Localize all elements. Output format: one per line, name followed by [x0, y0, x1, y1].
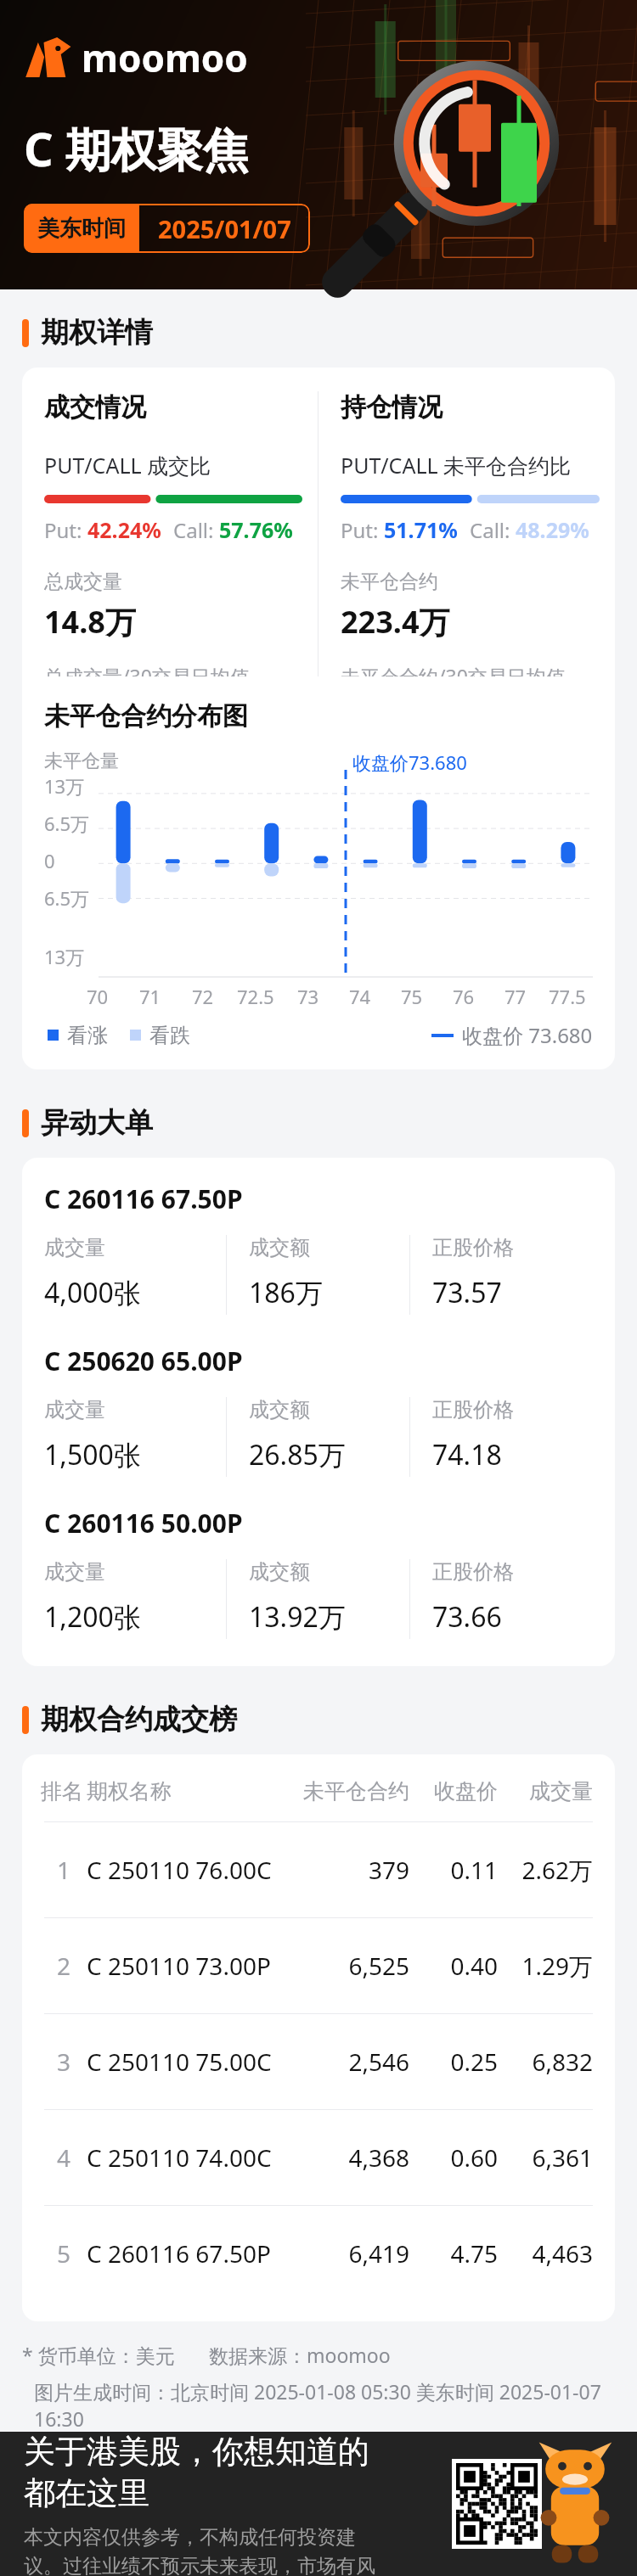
staticText: C 期权聚焦	[24, 117, 249, 180]
staticText: * 货币单位：美元	[22, 2342, 175, 2368]
staticText: 本文内容仅供参考，不构成任何投资建议。过往业绩不预示未来表现，市场有风险，投资需…	[24, 2525, 389, 2576]
staticText: 未平仓量	[44, 749, 119, 773]
staticText: 关于港美股，你想知道的都在这里	[24, 2432, 389, 2513]
staticText: 未平仓合约/30交易日均值	[341, 663, 566, 676]
button[interactable]: 5	[22, 2206, 615, 2301]
button[interactable]: C 260116 67.50P	[22, 1158, 615, 1315]
staticText: 71	[139, 984, 161, 1009]
staticText: 14.8万	[44, 601, 136, 643]
staticText: 正股价格	[432, 1397, 514, 1423]
staticText: 收盘价 73.680	[462, 1021, 593, 1049]
staticText: 成交额	[249, 1235, 310, 1260]
staticText: 总成交量/30交易日均值	[44, 663, 250, 676]
staticText: 6,832	[498, 2046, 593, 2078]
staticText: 排名	[41, 1778, 87, 1804]
staticText: 2.62万	[498, 1854, 593, 1886]
staticText: 看涨	[67, 1023, 108, 1048]
staticText: 0.60	[409, 2141, 498, 2174]
button[interactable]: 美东时间	[24, 204, 310, 253]
staticText: 总成交量	[44, 570, 122, 594]
staticText: 期权名称	[87, 1778, 284, 1804]
staticText: 74.18	[432, 1436, 502, 1473]
staticText: 70	[87, 984, 109, 1009]
staticText: 4	[41, 2141, 87, 2174]
staticText: Put:	[44, 516, 87, 544]
staticText: 成交量	[44, 1559, 105, 1585]
staticText: 1,500张	[44, 1436, 141, 1473]
staticText: 5	[41, 2237, 87, 2270]
staticText: 4,463	[498, 2237, 593, 2270]
staticText: moomoo	[82, 32, 248, 83]
staticText: 正股价格	[432, 1235, 514, 1260]
staticText: 0.40	[409, 1950, 498, 1982]
staticText: C 260116 50.00P	[44, 1506, 243, 1541]
staticText: 6,361	[498, 2141, 593, 2174]
staticText: 13万	[44, 944, 85, 969]
staticText: 未平仓合约	[284, 1778, 409, 1804]
staticText: Call:	[173, 516, 219, 544]
staticText: 74	[349, 984, 371, 1009]
staticText: 收盘价	[409, 1778, 498, 1804]
button[interactable]: C 260116 50.00P	[22, 1477, 615, 1666]
staticText: 77	[505, 984, 527, 1009]
button[interactable]: 成交情况	[22, 368, 615, 1069]
staticText: 1,200张	[44, 1598, 141, 1636]
staticText: 6,525	[284, 1950, 409, 1982]
button[interactable]: 3	[22, 2014, 615, 2109]
staticText: 13.92万	[249, 1598, 346, 1636]
staticText: 图片生成时间：北京时间 2025-01-08 05:30 美东时间 2025-0…	[34, 2378, 637, 2432]
staticText: C 250110 76.00C	[87, 1854, 284, 1886]
staticText: 2	[41, 1950, 87, 1982]
staticText: 4.75	[409, 2237, 498, 2270]
button[interactable]: 1	[22, 1822, 615, 1917]
staticText: 51.71%	[384, 515, 458, 544]
staticText: 3	[41, 2046, 87, 2078]
staticText: C 250110 74.00C	[87, 2141, 284, 2174]
staticText: 1.29万	[498, 1950, 593, 1982]
staticText: 持仓情况	[341, 391, 443, 424]
staticText: 26.85万	[249, 1436, 346, 1473]
staticText: 73	[297, 984, 319, 1009]
staticText: 48.29%	[516, 515, 589, 544]
staticText: 73.57	[432, 1274, 502, 1311]
button[interactable]: C 250620 65.00P	[22, 1315, 615, 1477]
staticText: 2,546	[284, 2046, 409, 2078]
staticText: 0.11	[409, 1854, 498, 1886]
staticText: 4,368	[284, 2141, 409, 2174]
staticText: 成交量	[44, 1397, 105, 1423]
staticText: 0	[44, 848, 55, 873]
staticText: 76	[453, 984, 475, 1009]
staticText: 异动大单	[41, 1105, 153, 1141]
staticText: 成交额	[249, 1397, 310, 1423]
staticText: 美东时间	[37, 215, 126, 243]
staticText: 72	[192, 984, 214, 1009]
staticText: PUT/CALL 成交比	[44, 451, 211, 480]
staticText: 2025/01/07	[158, 212, 291, 245]
staticText: 成交额	[249, 1559, 310, 1585]
staticText: 数据来源：moomoo	[209, 2342, 391, 2368]
staticText: Put:	[341, 516, 384, 544]
staticText: 未平仓合约分布图	[44, 700, 248, 732]
staticText: 成交情况	[44, 391, 146, 424]
staticText: Call:	[470, 516, 516, 544]
staticText: 72.5	[237, 984, 274, 1009]
staticText: C 260116 67.50P	[87, 2237, 284, 2270]
staticText: C 250620 65.00P	[44, 1344, 243, 1378]
staticText: 6,419	[284, 2237, 409, 2270]
staticText: 223.4万	[341, 601, 450, 643]
button[interactable]: 2	[22, 1918, 615, 2013]
staticText: 未平仓合约	[341, 570, 438, 594]
staticText: 186万	[249, 1274, 323, 1311]
staticText: 1	[41, 1854, 87, 1886]
staticText: 成交量	[44, 1235, 105, 1260]
staticText: C 250110 75.00C	[87, 2046, 284, 2078]
button[interactable]: 4	[22, 2110, 615, 2205]
staticText: 收盘价73.680	[352, 749, 467, 775]
staticText: 期权合约成交榜	[41, 1702, 237, 1737]
staticText: 6.5万	[44, 811, 90, 836]
staticText: 77.5	[549, 984, 586, 1009]
staticText: 57.76%	[219, 515, 293, 544]
staticText: 正股价格	[432, 1559, 514, 1585]
staticText: 0.25	[409, 2046, 498, 2078]
staticText: 13万	[44, 773, 85, 799]
